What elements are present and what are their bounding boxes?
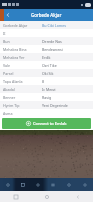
button[interactable]: List: [45, 178, 61, 191]
button[interactable]: Connect to Emlak: [2, 118, 91, 129]
staticText: Oki Sik: [42, 71, 54, 76]
button[interactable]: Recents: [0, 191, 31, 202]
staticText: Parsel: [3, 71, 42, 76]
button[interactable]: Asma: [0, 109, 93, 117]
staticText: Bendewonsi: [42, 47, 63, 52]
button[interactable]: Back: [4, 11, 12, 19]
staticText: Tapu Alanla: [3, 79, 42, 84]
button[interactable]: Layers: [61, 178, 77, 191]
staticText: II: [3, 31, 42, 36]
staticText: Gorbede Akjar: [31, 12, 62, 18]
staticText: Bu Cibi Lomes: [42, 23, 66, 28]
button[interactable]: Map: [15, 178, 30, 191]
button[interactable]: Benner: [0, 93, 93, 101]
staticText: Bun: [3, 39, 42, 44]
button[interactable]: II: [0, 29, 93, 37]
staticText: Benner: [3, 95, 42, 100]
button[interactable]: Tapu Alanla: [0, 77, 93, 85]
staticText: Abadal: [3, 87, 42, 92]
staticText: Rasig: [42, 95, 52, 100]
staticText: Yeni Degerinde: [42, 103, 68, 108]
staticText: Connect to Emlak: [33, 121, 67, 126]
button[interactable]: Home: [0, 178, 15, 191]
staticText: Derede Nas: [42, 39, 62, 44]
staticText: Mehabra Yer: [3, 55, 42, 60]
staticText: Ozri Tike: [42, 63, 57, 68]
staticText: Vale: [3, 63, 42, 68]
button[interactable]: Mehabra Bina: [0, 45, 93, 53]
staticText: Gorbede Akjar: [3, 23, 42, 28]
button[interactable]: Menu: [77, 178, 93, 191]
staticText: Hyrim Tip: [3, 103, 42, 108]
button[interactable]: Gorbede Akjar: [0, 21, 93, 29]
button[interactable]: Bun: [0, 37, 93, 45]
button[interactable]: Home: [31, 191, 62, 202]
staticText: Ic Mevzi: [42, 87, 56, 92]
button[interactable]: Abadal: [0, 85, 93, 93]
staticText: Mehabra Bina: [3, 47, 42, 52]
button[interactable]: Mehabra Yer: [0, 53, 93, 61]
button[interactable]: Vale: [0, 61, 93, 69]
button[interactable]: Parsel: [0, 69, 93, 77]
staticText: Erdik: [42, 55, 51, 60]
staticText: 8: [42, 79, 45, 84]
button[interactable]: Hyrim Tip: [0, 101, 93, 109]
button[interactable]: Search: [30, 178, 45, 191]
staticText: Asma: [3, 111, 42, 116]
